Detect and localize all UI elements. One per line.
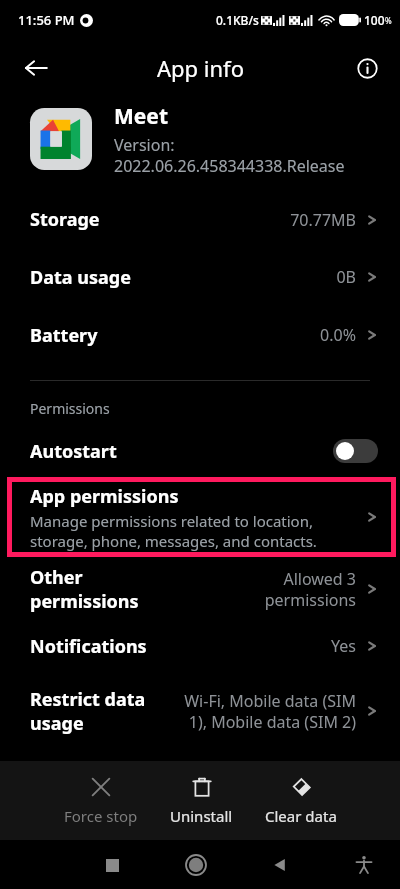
staticText: 0.0% xyxy=(199,324,356,346)
staticText: 11:56 PM xyxy=(18,11,75,29)
button[interactable]: Back xyxy=(258,843,302,887)
button[interactable]: Force stop xyxy=(56,770,146,832)
button[interactable]: Back xyxy=(14,46,58,90)
staticText: 0.1KB/s xyxy=(216,12,259,28)
button[interactable]: Data usage xyxy=(0,248,400,306)
button[interactable]: Accessibility xyxy=(342,843,386,887)
button[interactable]: Other permissions xyxy=(0,558,400,620)
button[interactable]: App permissions xyxy=(7,477,396,557)
staticText: 70.77MB xyxy=(199,209,356,231)
staticText: Yes xyxy=(199,635,356,657)
staticText: Permissions xyxy=(30,399,110,418)
staticText: App info xyxy=(157,53,244,83)
staticText: App permissions xyxy=(30,484,179,509)
button[interactable]: Autostart toggle xyxy=(333,439,378,463)
staticText: Force stop xyxy=(64,806,138,826)
button[interactable]: Clear data xyxy=(257,770,345,832)
button[interactable]: Battery xyxy=(0,306,400,364)
staticText: % xyxy=(385,15,392,26)
button[interactable]: Recents xyxy=(90,843,134,887)
button[interactable]: Storage xyxy=(0,191,400,248)
staticText: Storage xyxy=(30,207,100,232)
staticText: Allowed 3 permissions xyxy=(192,568,356,611)
staticText: Battery xyxy=(30,323,98,348)
staticText: Data usage xyxy=(30,265,131,290)
button[interactable]: App details xyxy=(346,47,388,89)
button[interactable]: Notifications xyxy=(0,620,400,672)
staticText: Uninstall xyxy=(170,806,233,826)
staticText: Notifications xyxy=(30,634,147,659)
staticText: 0B xyxy=(199,266,356,288)
staticText: Clear data xyxy=(265,806,337,826)
staticText: Wi-Fi, Mobile data (SIM 1), Mobile data … xyxy=(173,690,356,733)
staticText: Autostart xyxy=(30,439,333,464)
staticText: 100 xyxy=(364,12,385,28)
staticText: Other permissions xyxy=(30,565,186,613)
button[interactable]: Uninstall xyxy=(162,770,241,832)
staticText: Manage permissions related to location, … xyxy=(30,511,358,551)
staticText: Version: 2022.06.26.458344338.Release xyxy=(114,134,380,177)
button[interactable]: Restrict data usage xyxy=(0,672,400,750)
staticText: Meet xyxy=(114,102,168,131)
button[interactable]: Home xyxy=(174,843,218,887)
staticText: Restrict data usage xyxy=(30,687,167,735)
button[interactable]: Autostart xyxy=(0,430,400,472)
